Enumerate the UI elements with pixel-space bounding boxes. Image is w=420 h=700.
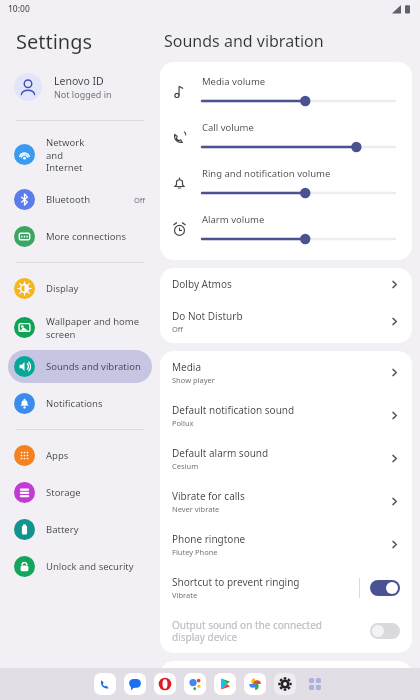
staticText: Dolby Atmos	[172, 277, 232, 291]
staticText: Cesium	[172, 461, 199, 471]
staticText: Network and Internet	[46, 136, 146, 173]
button[interactable]: Output sound on the connected display de…	[370, 623, 400, 639]
button[interactable]: Vibrate for calls	[160, 480, 412, 523]
button[interactable]: Phone	[94, 673, 116, 695]
staticText: Not logged in	[54, 88, 112, 100]
button[interactable]: Phone ringtone	[160, 523, 412, 566]
button[interactable]: Media	[160, 351, 412, 394]
staticText: Display	[46, 282, 146, 295]
button[interactable]: Shortcut to prevent ringing	[160, 566, 412, 609]
button[interactable]: Opera	[154, 673, 176, 695]
button[interactable]: More connections	[8, 220, 152, 253]
button[interactable]: Battery	[8, 513, 152, 546]
staticText: More connections	[46, 230, 146, 243]
staticText: Media	[172, 360, 202, 374]
staticText: More sounds and vibration	[172, 670, 299, 684]
staticText: Apps	[46, 449, 146, 462]
button[interactable]: Assistant	[184, 673, 206, 695]
staticText: Sounds and vibration	[46, 360, 146, 373]
staticText: Off	[134, 195, 146, 205]
button[interactable]: Display	[8, 272, 152, 305]
staticText: Flutey Phone	[172, 547, 218, 557]
staticText: Settings	[16, 28, 93, 55]
staticText: Default notification sound	[172, 403, 295, 417]
staticText: Vibrate	[172, 590, 198, 600]
button[interactable]: Media volume	[160, 68, 412, 114]
staticText: Ring and notification volume	[202, 167, 331, 180]
button[interactable]: Lenovo ID	[0, 69, 160, 105]
button[interactable]: Default alarm sound	[160, 437, 412, 480]
button[interactable]: Shortcut to prevent ringing	[370, 580, 400, 596]
staticText: Storage	[46, 486, 146, 499]
staticText: Shortcut to prevent ringing	[172, 575, 300, 589]
staticText: Phone ringtone	[172, 532, 246, 546]
button[interactable]: Apps	[8, 439, 152, 472]
staticText: Unlock and security	[46, 560, 146, 573]
staticText: Pollux	[172, 418, 194, 428]
button[interactable]: Photos	[244, 673, 266, 695]
button[interactable]: Default notification sound	[160, 394, 412, 437]
staticText: Vibrate for calls	[172, 489, 245, 503]
staticText: Show player	[172, 375, 215, 385]
button[interactable]: Unlock and security	[8, 550, 152, 583]
button[interactable]: Bluetooth	[8, 183, 152, 216]
staticText: 10:00	[8, 3, 30, 15]
staticText: Notifications	[46, 397, 146, 410]
staticText: Off	[172, 324, 184, 334]
staticText: Lenovo ID	[54, 74, 104, 88]
button[interactable]: All apps	[304, 673, 326, 695]
button[interactable]: Ring and notification volume	[160, 160, 412, 206]
staticText: Default alarm sound	[172, 446, 269, 460]
button[interactable]: Storage	[8, 476, 152, 509]
button[interactable]: Output sound on the connected display de…	[160, 609, 412, 653]
button[interactable]: Play Store	[214, 673, 236, 695]
button[interactable]: Do Not Disturb	[160, 300, 412, 343]
staticText: Alarm volume	[202, 213, 265, 226]
button[interactable]: Network and Internet	[8, 130, 152, 179]
button[interactable]: Alarm volume	[160, 206, 412, 252]
button[interactable]: Call volume	[160, 114, 412, 160]
staticText: Never vibrate	[172, 504, 220, 514]
button[interactable]: Settings	[274, 673, 296, 695]
button[interactable]: Dolby Atmos	[160, 268, 412, 300]
button[interactable]: Wallpaper and home screen	[8, 309, 152, 346]
staticText: Bluetooth	[46, 193, 134, 206]
staticText: Call volume	[202, 121, 254, 134]
button[interactable]: More sounds and vibration	[160, 661, 412, 693]
staticText: Sounds and vibration	[164, 30, 324, 52]
staticText: Battery	[46, 523, 146, 536]
staticText: Media volume	[202, 75, 266, 88]
button[interactable]: Messages	[124, 673, 146, 695]
button[interactable]: Notifications	[8, 387, 152, 420]
staticText: Wallpaper and home screen	[46, 315, 146, 340]
staticText: Do Not Disturb	[172, 309, 243, 323]
staticText: Output sound on the connected display de…	[172, 618, 352, 644]
button[interactable]: Sounds and vibration	[8, 350, 152, 383]
